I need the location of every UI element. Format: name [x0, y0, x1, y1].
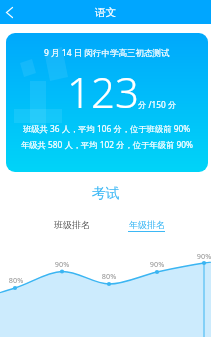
staticText: 123	[67, 63, 139, 120]
staticText: 班级共 36 人，平均 106 分，位于班级前 90%	[23, 123, 191, 134]
staticText: 90%	[146, 259, 168, 269]
staticText: 班级排名	[54, 219, 90, 230]
staticText: 语文	[95, 6, 116, 19]
staticText: 9 月 14 日 闵行中学高三初态测试	[44, 47, 170, 59]
staticText: 90%	[193, 251, 211, 261]
staticText: 考试	[0, 185, 211, 203]
staticText: 年级排名	[129, 219, 165, 230]
staticText: 年级共 580 人，平均 102 分，位于年级前 90%	[21, 139, 193, 150]
button[interactable]: 班级排名	[48, 219, 96, 235]
button[interactable]: 年级排名	[122, 219, 171, 235]
staticText: 分 /150 分	[138, 99, 177, 110]
staticText: 80%	[5, 275, 27, 285]
staticText: 90%	[51, 259, 73, 269]
button[interactable]: Back	[0, 0, 19, 24]
staticText: 80%	[98, 271, 120, 281]
